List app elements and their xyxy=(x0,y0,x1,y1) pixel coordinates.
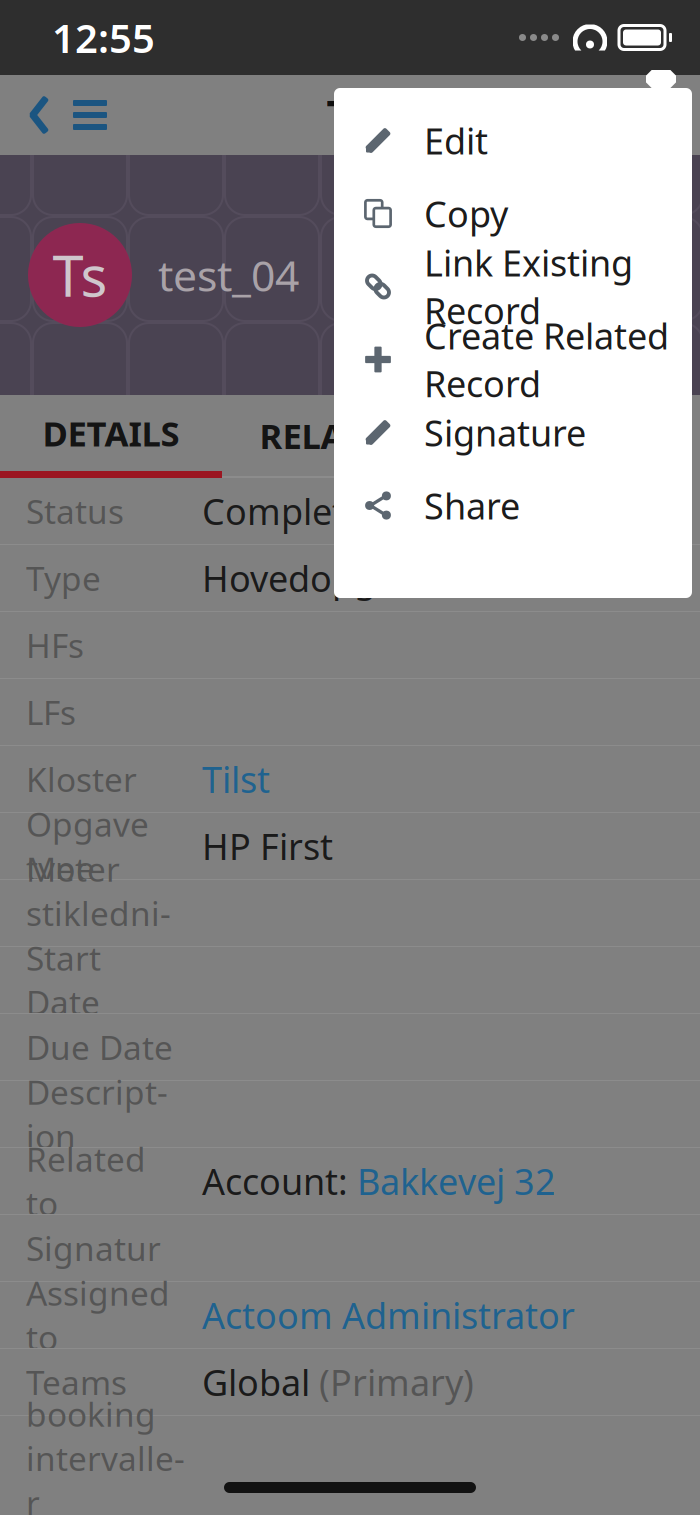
staticText: Global xyxy=(202,1358,319,1406)
staticText: Related to xyxy=(26,1137,146,1225)
staticText: Link Existing Record xyxy=(424,239,633,334)
staticText: Edit xyxy=(424,117,488,164)
staticText: Ts xyxy=(52,238,107,312)
staticText: Start Date xyxy=(26,936,101,1024)
button[interactable]: DETAILS xyxy=(0,395,222,478)
staticText: Kloster xyxy=(26,757,137,801)
staticText: Signatur xyxy=(26,1226,161,1270)
staticText: Share xyxy=(424,482,520,529)
staticText: HP First xyxy=(202,822,333,870)
staticText: booking xyxy=(26,1392,156,1436)
button[interactable]: RELATED xyxy=(222,395,444,478)
button[interactable]: More options xyxy=(634,93,700,137)
staticText: Completed xyxy=(202,487,387,535)
button[interactable]: Edit xyxy=(334,104,692,177)
staticText: HFs xyxy=(26,623,84,667)
button[interactable]: Signature xyxy=(334,396,692,469)
staticText: Bakkevej 32 xyxy=(357,1157,556,1205)
button[interactable]: Create Related Record xyxy=(334,323,692,396)
staticText: (Primary) xyxy=(319,1358,474,1406)
button[interactable]: Menu xyxy=(56,93,112,137)
staticText: Tilst xyxy=(202,755,270,803)
staticText: Create Related Record xyxy=(424,312,669,407)
staticText: Copy xyxy=(424,190,508,237)
staticText: intervaller xyxy=(26,1436,185,1515)
staticText: Description xyxy=(26,1070,168,1158)
button[interactable]: Share xyxy=(334,469,692,542)
staticText: Signature xyxy=(424,409,586,456)
staticText: Account: xyxy=(202,1157,357,1205)
staticText: Task xyxy=(326,88,419,142)
staticText: Opgave type xyxy=(26,802,149,890)
staticText: 12:55 xyxy=(52,11,155,64)
staticText: Status xyxy=(26,489,124,533)
staticText: LFs xyxy=(26,690,76,734)
staticText: RELATED xyxy=(259,412,406,458)
staticText: Meter stikledning xyxy=(26,847,171,979)
staticText: Type xyxy=(26,556,101,600)
staticText: Teams xyxy=(26,1360,127,1404)
button[interactable]: Copy xyxy=(334,177,692,250)
staticText: test_04 xyxy=(158,247,299,303)
staticText: Assigned to xyxy=(26,1271,170,1359)
staticText: Actoom Administrator xyxy=(202,1291,575,1339)
button[interactable]: Back xyxy=(0,93,56,137)
staticText: DETAILS xyxy=(42,410,179,456)
button[interactable]: Link Existing Record xyxy=(334,250,692,323)
staticText: Hovedopgave xyxy=(202,554,434,602)
staticText: Due Date xyxy=(26,1025,173,1069)
